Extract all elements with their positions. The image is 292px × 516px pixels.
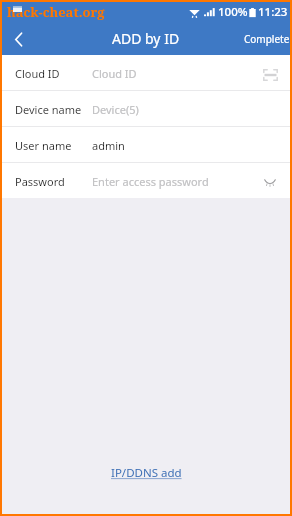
staticText: 100% <box>218 4 248 20</box>
button[interactable]: Cloud ID <box>2 55 290 90</box>
staticText: User name <box>15 138 72 153</box>
staticText: admin <box>92 138 125 153</box>
button[interactable]: Back <box>2 22 35 55</box>
button[interactable]: Show password <box>258 171 282 193</box>
staticText: Cloud ID <box>15 66 60 81</box>
button[interactable]: Scan QR code <box>258 63 282 85</box>
button[interactable]: User name <box>2 127 290 162</box>
staticText: Device name <box>15 102 82 117</box>
staticText: Complete <box>244 32 290 46</box>
button[interactable]: IP/DDNS add <box>101 459 192 487</box>
staticText: ADD by ID <box>112 29 180 48</box>
staticText: IP/DDNS add <box>111 465 182 481</box>
staticText: hack-cheat.org <box>7 3 105 21</box>
staticText: 11:23 <box>258 4 288 20</box>
staticText: Cloud ID <box>92 66 137 81</box>
staticText: Enter access password <box>92 174 209 189</box>
button[interactable]: Device name <box>2 91 290 126</box>
staticText: Password <box>15 174 65 189</box>
button[interactable]: Complete <box>236 23 290 55</box>
button[interactable]: Password <box>2 163 290 198</box>
staticText: Device(5) <box>92 102 139 117</box>
